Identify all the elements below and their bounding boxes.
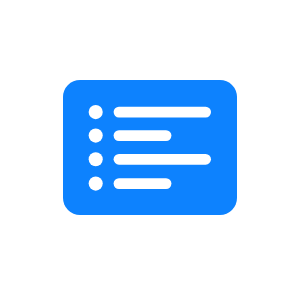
button[interactable]: Tasks list app icon	[63, 80, 237, 215]
